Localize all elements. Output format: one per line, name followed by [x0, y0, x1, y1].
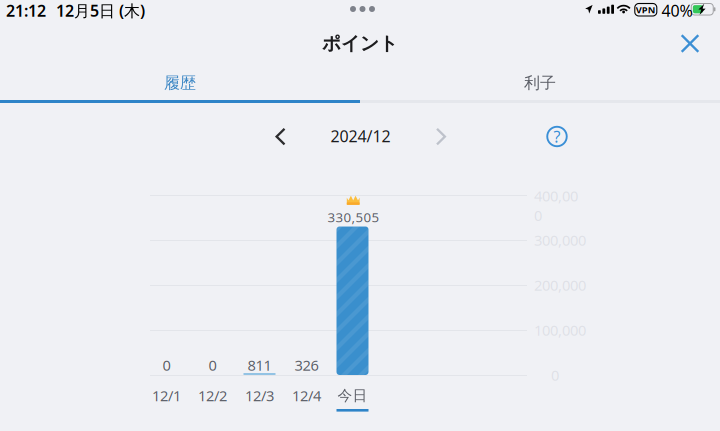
staticText: 2024/12	[330, 125, 390, 147]
button[interactable]: 12/4	[283, 388, 329, 412]
staticText: 100,000	[534, 320, 586, 340]
staticText: 12/2	[198, 386, 227, 405]
button[interactable]: Next month	[422, 118, 460, 156]
button[interactable]: 今日	[329, 388, 375, 412]
staticText: 40%	[661, 0, 692, 21]
button[interactable]: 12/2	[189, 388, 235, 412]
staticText: VPN	[636, 4, 656, 16]
button[interactable]: Previous month	[261, 118, 299, 156]
button[interactable]: 履歴	[0, 66, 360, 100]
button[interactable]: Close	[668, 22, 712, 64]
staticText: 12/4	[292, 386, 321, 405]
staticText: 330,505	[327, 208, 379, 226]
staticText: 0	[162, 355, 170, 375]
staticText: 12/3	[245, 386, 274, 405]
staticText: 200,000	[534, 275, 586, 295]
staticText: 400,00	[534, 186, 578, 205]
staticText: 0	[551, 365, 559, 385]
button[interactable]: 12/3	[236, 388, 282, 412]
staticText: 履歴	[164, 73, 196, 93]
button[interactable]: 2024/12	[305, 119, 415, 153]
staticText: 12月5日 (木)	[56, 0, 145, 21]
staticText: 326	[294, 355, 318, 375]
staticText: ?	[553, 126, 560, 147]
staticText: 300,000	[534, 230, 586, 250]
button[interactable]: Help	[540, 119, 574, 153]
staticText: ポイント	[322, 32, 398, 55]
staticText: 811	[247, 355, 271, 375]
staticText: 0	[208, 355, 216, 375]
staticText: 0	[534, 205, 542, 225]
button[interactable]: 12/1	[143, 388, 189, 412]
button[interactable]: 利子	[360, 66, 720, 100]
staticText: 21:12	[6, 0, 46, 21]
staticText: 利子	[524, 73, 556, 93]
staticText: 今日	[337, 386, 367, 404]
staticText: 12/1	[152, 386, 181, 405]
